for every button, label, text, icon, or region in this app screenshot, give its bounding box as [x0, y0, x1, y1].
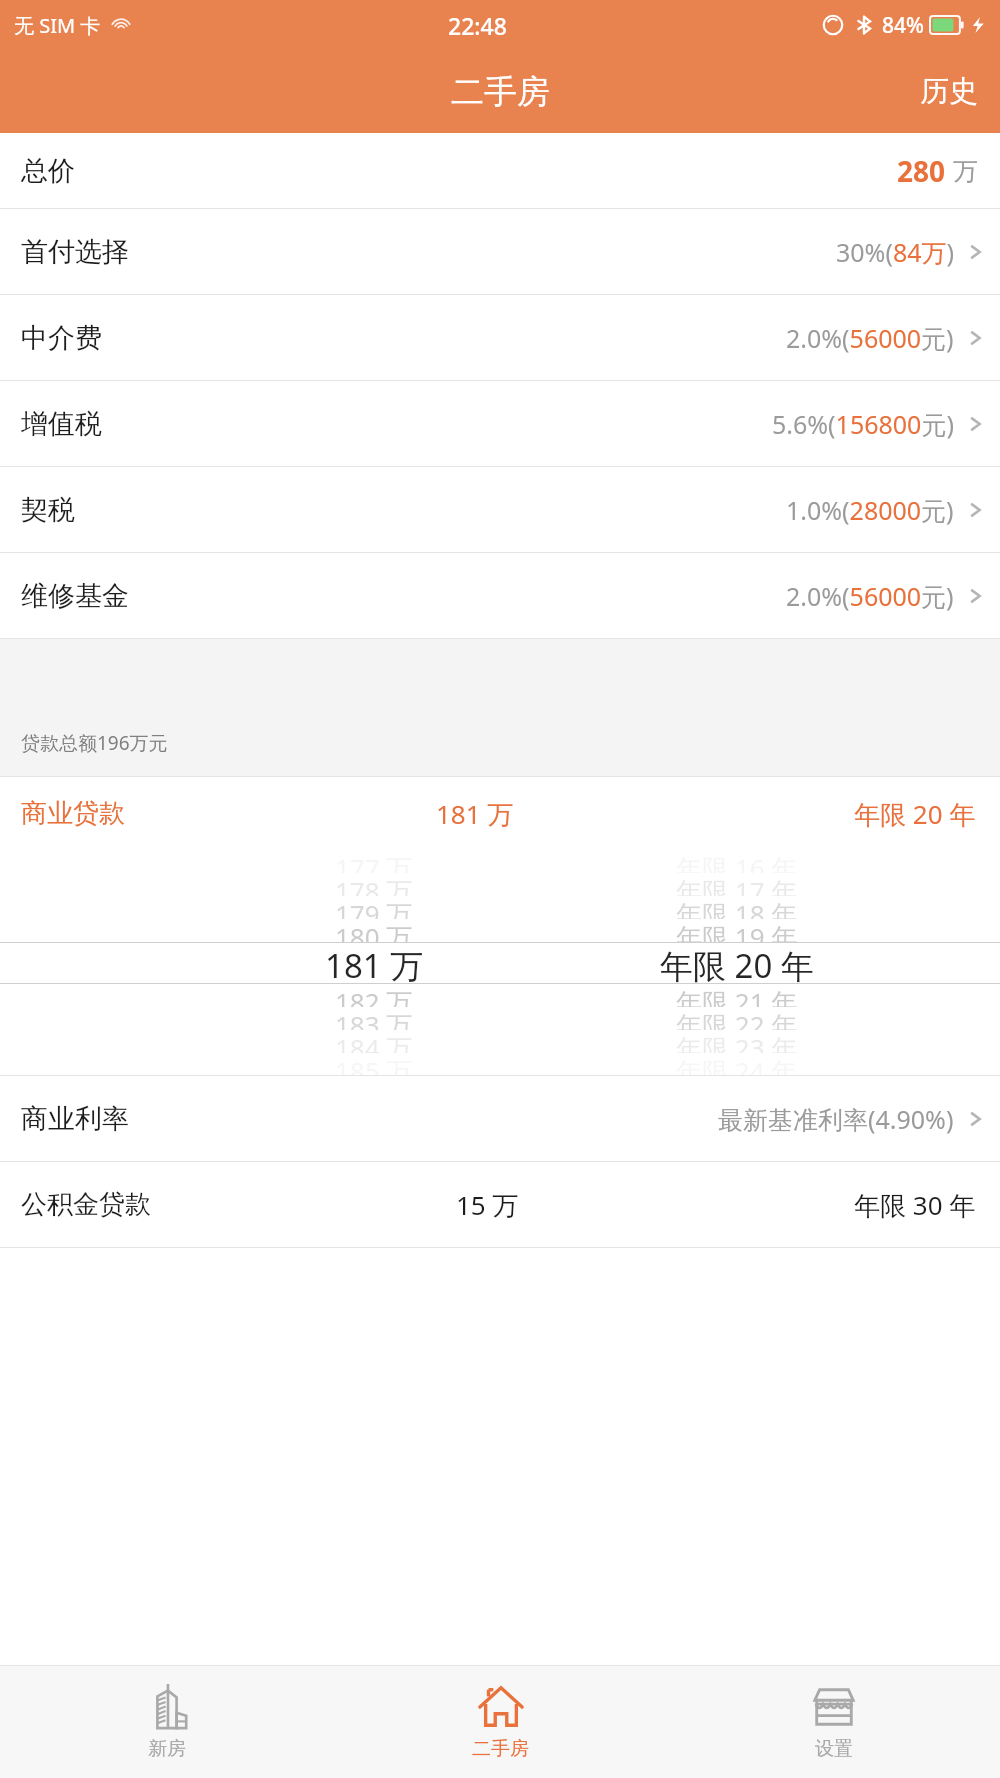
staticText: 年限 17 年	[676, 873, 798, 896]
button[interactable]: 中介费	[0, 295, 1000, 380]
staticText: 184 万	[335, 1030, 413, 1053]
staticText: 最新基准利率(4.90%)	[718, 1102, 954, 1136]
staticText: 182 万	[335, 984, 413, 1007]
staticText: 2.0%(56000元)	[786, 579, 954, 613]
button[interactable]: 新房	[0, 1666, 334, 1778]
staticText: 万	[953, 156, 978, 187]
staticText: 年限 18 年	[676, 896, 798, 919]
staticText: 历史	[920, 73, 978, 110]
staticText: 贷款总额196万元	[21, 730, 168, 756]
staticText: 177 万	[335, 850, 413, 873]
staticText: 二手房	[472, 1737, 529, 1761]
button[interactable]: 商业贷款	[0, 777, 1000, 850]
staticText: 183 万	[335, 1007, 413, 1030]
staticText: 181 万	[325, 943, 424, 983]
staticText: 年限 23 年	[676, 1030, 798, 1053]
staticText: 年限 21 年	[676, 984, 798, 1007]
staticText: 二手房	[451, 71, 550, 113]
staticText: 年限 20 年	[660, 943, 814, 983]
button[interactable]: 公积金贷款	[0, 1162, 1000, 1247]
staticText: 84%	[882, 11, 924, 40]
staticText: 新房	[148, 1737, 186, 1761]
staticText: 年限 20 年	[854, 796, 976, 832]
staticText: 年限 24 年	[676, 1053, 798, 1075]
staticText: 178 万	[335, 873, 413, 896]
button[interactable]: 177 万	[0, 850, 1000, 1075]
staticText: 179 万	[335, 896, 413, 919]
staticText: 280	[897, 152, 946, 190]
button[interactable]: 契税	[0, 467, 1000, 552]
staticText: 年限 16 年	[676, 850, 798, 873]
staticText: 商业利率	[21, 1102, 129, 1136]
button[interactable]: 历史	[898, 59, 1000, 124]
staticText: 180 万	[335, 919, 413, 942]
staticText: 契税	[21, 493, 75, 527]
button[interactable]: 增值税	[0, 381, 1000, 466]
staticText: 维修基金	[21, 579, 129, 613]
staticText: 30%(84万)	[836, 235, 954, 269]
staticText: 商业贷款	[21, 797, 125, 830]
staticText: 公积金贷款	[21, 1188, 151, 1221]
staticText: 1.0%(28000元)	[786, 493, 954, 527]
button[interactable]: 维修基金	[0, 553, 1000, 638]
staticText: 22:48	[448, 10, 507, 41]
button[interactable]: 二手房	[334, 1666, 667, 1778]
staticText: 首付选择	[21, 235, 129, 269]
staticText: 2.0%(56000元)	[786, 321, 954, 355]
staticText: 181 万	[436, 796, 514, 832]
staticText: 15 万	[456, 1187, 519, 1223]
staticText: 增值税	[21, 407, 102, 441]
button[interactable]: 首付选择	[0, 209, 1000, 294]
staticText: 中介费	[21, 321, 102, 355]
button[interactable]: 商业利率	[0, 1076, 1000, 1161]
staticText: 无 SIM 卡	[14, 12, 101, 39]
staticText: 年限 30 年	[854, 1187, 976, 1223]
button[interactable]: 总价	[0, 133, 1000, 208]
staticText: 年限 22 年	[676, 1007, 798, 1030]
button[interactable]: 设置	[667, 1666, 1000, 1778]
staticText: 总价	[21, 154, 75, 188]
staticText: 设置	[815, 1737, 853, 1761]
staticText: 5.6%(156800元)	[772, 407, 954, 441]
staticText: 年限 19 年	[676, 919, 798, 942]
